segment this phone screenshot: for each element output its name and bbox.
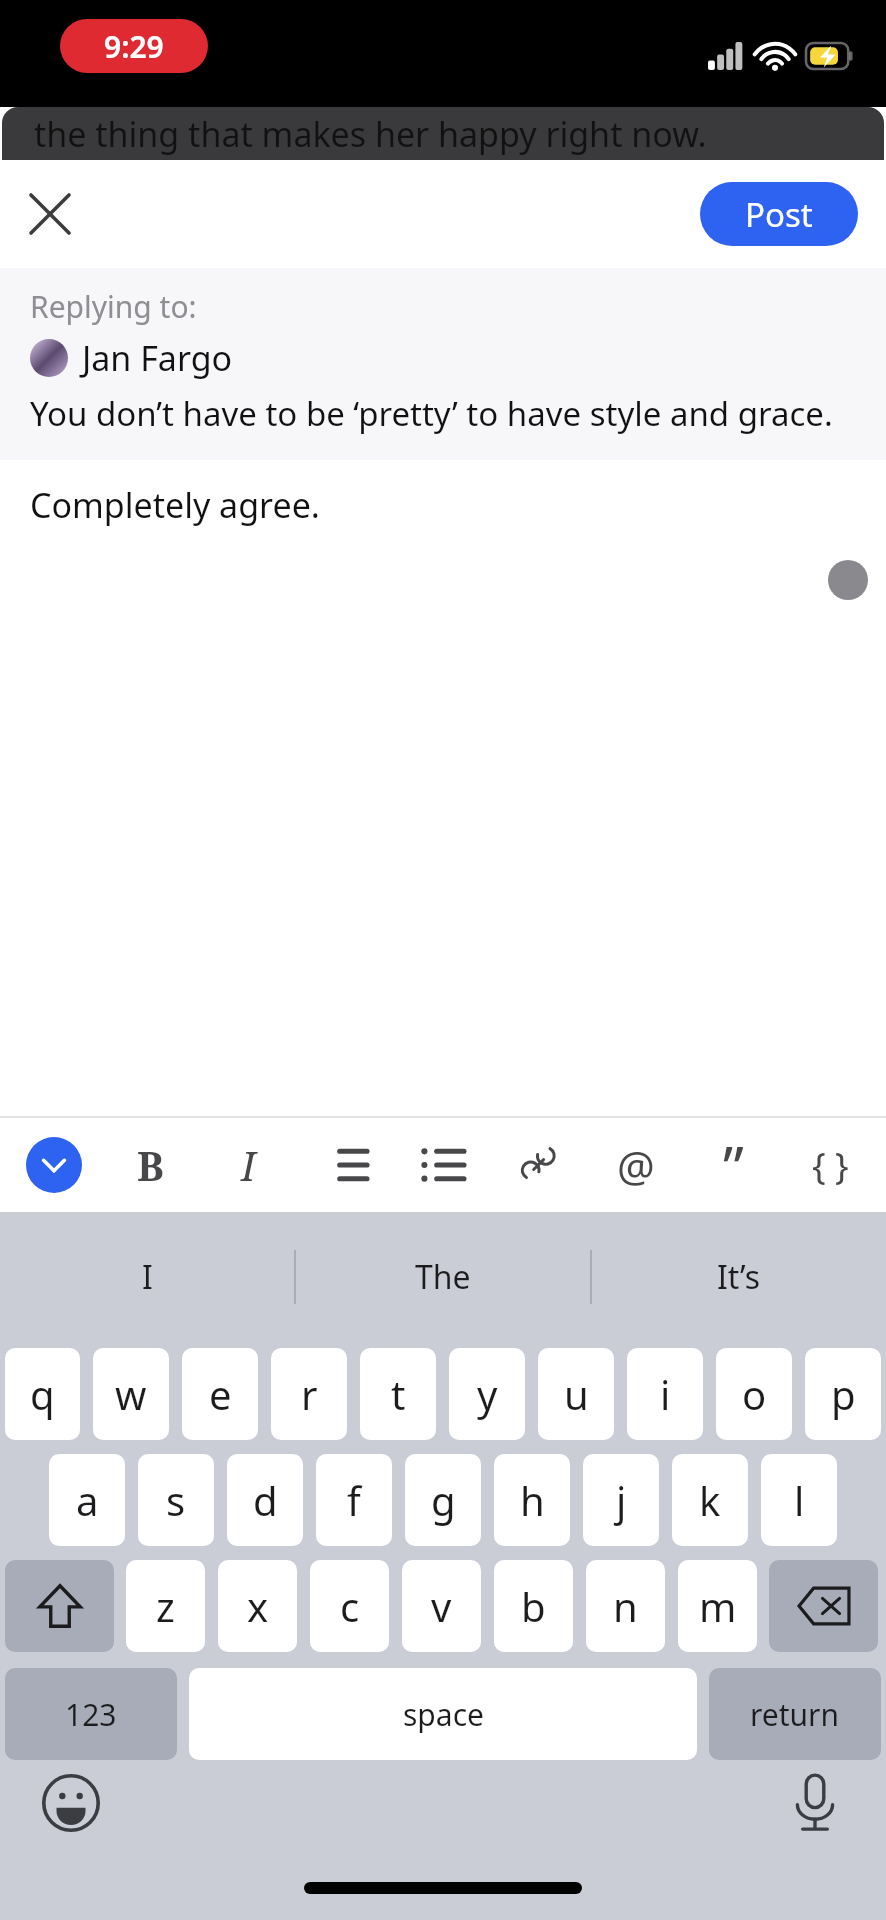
button[interactable]: n [586, 1560, 665, 1652]
staticText: Post [745, 192, 813, 237]
button[interactable]: The [296, 1212, 590, 1342]
button[interactable]: Close [14, 178, 86, 250]
button[interactable]: Bold [120, 1127, 180, 1203]
button[interactable]: c [310, 1560, 389, 1652]
button[interactable]: o [716, 1348, 792, 1440]
button[interactable]: Shift [5, 1560, 114, 1652]
staticText: u [564, 1367, 589, 1421]
button[interactable]: m [678, 1560, 757, 1652]
button[interactable]: a [49, 1454, 125, 1546]
button[interactable]: u [538, 1348, 614, 1440]
button[interactable]: t [360, 1348, 436, 1440]
button[interactable]: g [405, 1454, 481, 1546]
staticText: It’s [717, 1255, 761, 1299]
staticText: a [76, 1473, 99, 1527]
staticText: s [166, 1473, 186, 1527]
staticText: m [699, 1579, 737, 1633]
staticText: v [431, 1579, 452, 1633]
button[interactable]: y [449, 1348, 525, 1440]
staticText: z [156, 1579, 175, 1633]
button[interactable]: 123 [5, 1668, 177, 1760]
button[interactable]: w [93, 1348, 169, 1440]
staticText: k [699, 1473, 721, 1527]
staticText: l [794, 1473, 805, 1527]
button[interactable]: p [805, 1348, 881, 1440]
button[interactable]: s [138, 1454, 214, 1546]
staticText: Jan Fargo [82, 335, 233, 381]
button[interactable]: Bulleted list [412, 1127, 472, 1203]
staticText: x [247, 1579, 269, 1633]
staticText: r [301, 1367, 318, 1421]
button[interactable]: d [227, 1454, 303, 1546]
button[interactable]: It’s [592, 1212, 886, 1342]
button[interactable]: Post [700, 182, 858, 246]
button[interactable]: Emoji [38, 1770, 104, 1836]
button[interactable]: space [189, 1668, 697, 1760]
staticText: j [616, 1473, 627, 1527]
staticText: t [391, 1367, 406, 1421]
button[interactable]: I [0, 1212, 294, 1342]
staticText: p [831, 1367, 856, 1421]
staticText: 9:29 [104, 26, 164, 67]
staticText: q [30, 1367, 55, 1421]
staticText: You don’t have to be ‘pretty’ to have st… [30, 391, 833, 436]
button[interactable]: Quote [703, 1127, 763, 1203]
staticText: g [431, 1473, 456, 1527]
staticText: { } [812, 1141, 849, 1190]
staticText: d [253, 1473, 278, 1527]
staticText: space [403, 1694, 484, 1735]
button[interactable]: v [402, 1560, 481, 1652]
button[interactable]: q [5, 1348, 80, 1440]
staticText: y [477, 1367, 498, 1421]
button[interactable]: k [672, 1454, 748, 1546]
button[interactable]: i [627, 1348, 703, 1440]
staticText: b [521, 1579, 546, 1633]
staticText: B [137, 1138, 164, 1192]
button[interactable]: e [182, 1348, 258, 1440]
staticText: e [209, 1367, 232, 1421]
staticText: i [660, 1367, 671, 1421]
button[interactable]: Italic [218, 1127, 278, 1203]
staticText: ” [723, 1127, 744, 1203]
button[interactable]: f [316, 1454, 392, 1546]
button[interactable]: Numbered list [315, 1127, 375, 1203]
staticText: f [347, 1473, 361, 1527]
staticText: the thing that makes her happy right now… [34, 111, 707, 157]
button[interactable]: Code [800, 1127, 860, 1203]
button[interactable]: j [583, 1454, 659, 1546]
staticText: h [520, 1473, 545, 1527]
button[interactable]: Backspace [769, 1560, 878, 1652]
staticText: I [241, 1138, 256, 1192]
staticText: I [142, 1255, 153, 1299]
button[interactable]: b [494, 1560, 573, 1652]
button[interactable]: h [494, 1454, 570, 1546]
button[interactable]: return [709, 1668, 881, 1760]
button[interactable]: Collapse [26, 1137, 82, 1193]
staticText: c [340, 1579, 360, 1633]
button[interactable]: l [761, 1454, 837, 1546]
staticText: Replying to: [30, 286, 197, 327]
button[interactable]: Link [509, 1127, 569, 1203]
button[interactable]: z [126, 1560, 205, 1652]
button[interactable]: r [271, 1348, 347, 1440]
staticText: The [415, 1255, 471, 1299]
staticText: w [115, 1367, 147, 1421]
staticText: return [750, 1694, 840, 1735]
staticText: o [742, 1367, 767, 1421]
staticText: 123 [65, 1694, 117, 1735]
button[interactable]: Mention [606, 1127, 666, 1203]
staticText: n [613, 1579, 638, 1633]
button[interactable]: x [218, 1560, 297, 1652]
button[interactable]: Dictation [782, 1770, 848, 1836]
staticText: @ [617, 1137, 655, 1194]
staticText: Completely agree. [30, 482, 320, 528]
